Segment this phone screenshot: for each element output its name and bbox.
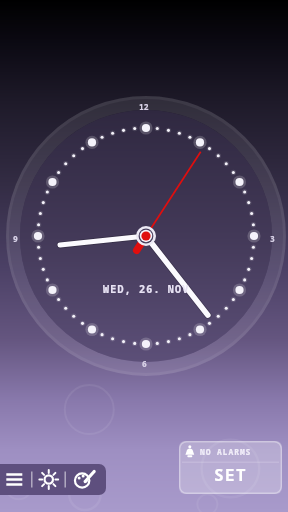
staticText: 12: [139, 101, 149, 112]
button[interactable]: NO ALARMS: [179, 441, 282, 494]
staticText: NO ALARMS: [200, 446, 252, 457]
staticText: 6: [142, 358, 147, 369]
staticText: SET: [214, 464, 248, 486]
button[interactable]: Menu: [0, 464, 36, 495]
button[interactable]: Brightness: [36, 464, 71, 495]
staticText: 3: [270, 233, 275, 244]
button[interactable]: Theme: [71, 464, 106, 495]
staticText: 9: [13, 233, 18, 244]
button[interactable]: Menu: [0, 464, 106, 495]
staticText: WED, 26. NOV: [103, 282, 190, 296]
